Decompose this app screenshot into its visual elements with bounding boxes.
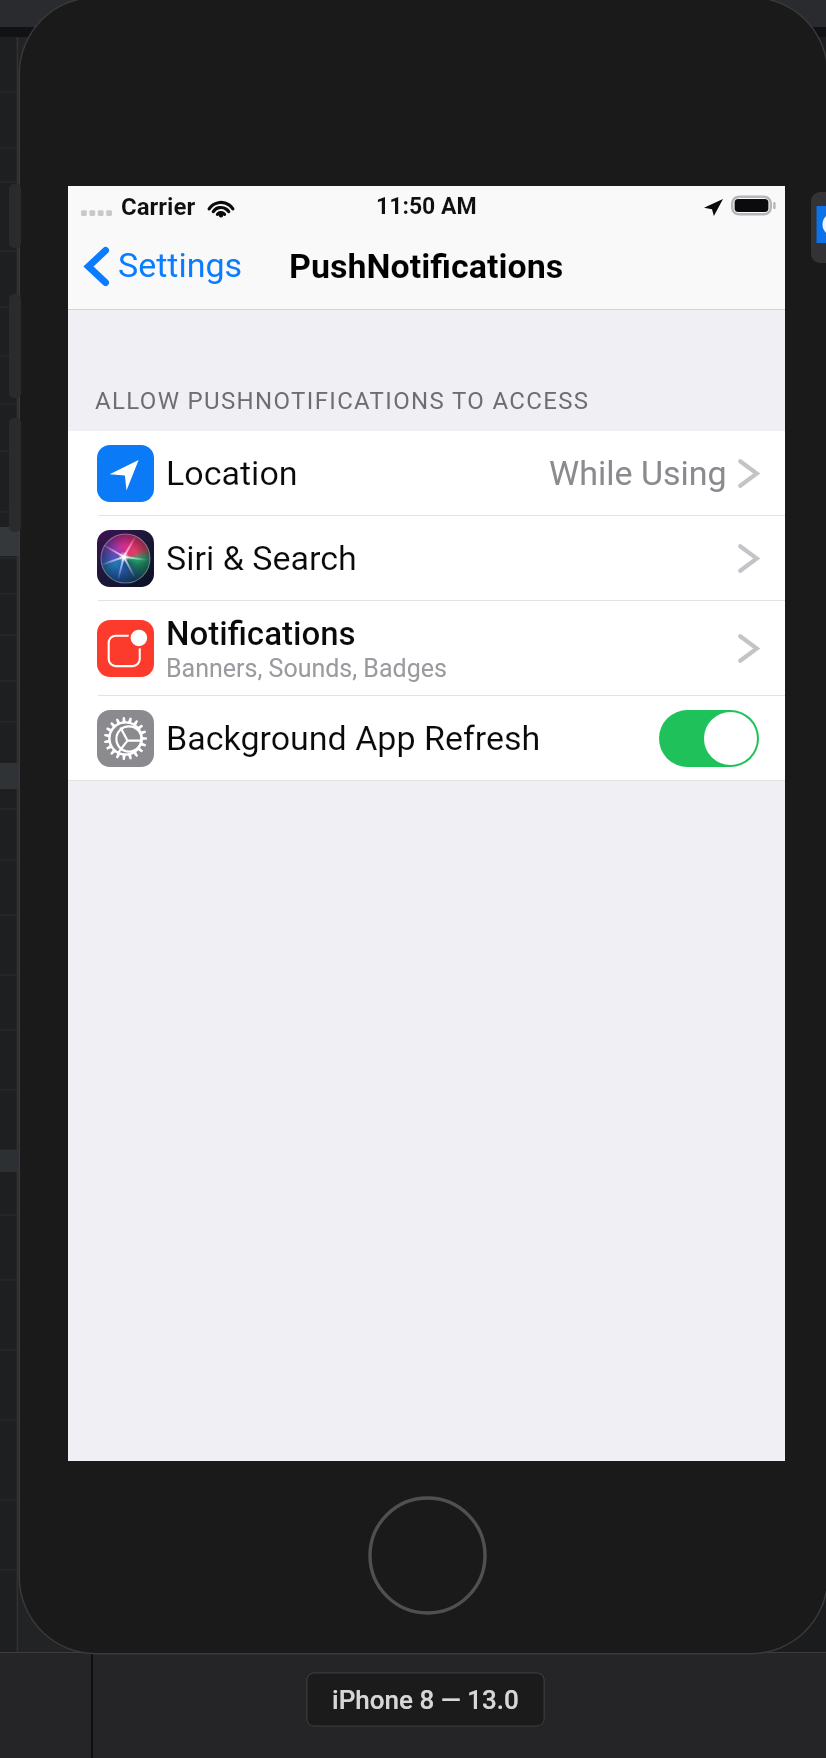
button[interactable]: Siri & Search (68, 516, 785, 600)
staticText: Notifications (166, 614, 356, 653)
staticText: Siri & Search (166, 538, 357, 578)
button[interactable]: Notifications (68, 601, 785, 695)
staticText: Carrier (121, 193, 196, 221)
button[interactable]: Location (68, 431, 785, 515)
staticText: Settings (118, 245, 243, 285)
staticText: Banners, Sounds, Badges (166, 654, 447, 683)
button[interactable]: Settings (68, 236, 255, 296)
staticText: PushNotifications (289, 246, 564, 286)
staticText: 11:50 AM (376, 193, 477, 220)
button[interactable]: iPhone 8 — 13.0 (306, 1672, 545, 1727)
button[interactable]: Background App Refresh (68, 696, 785, 780)
staticText: While Using (549, 453, 727, 493)
staticText: ALLOW PUSHNOTIFICATIONS TO ACCESS (95, 387, 590, 415)
button[interactable]: Home (368, 1496, 487, 1615)
staticText: Location (166, 453, 298, 493)
staticText: Background App Refresh (166, 718, 541, 758)
staticText: iPhone 8 — 13.0 (332, 1685, 519, 1715)
button[interactable]: Background App Refresh toggle (659, 710, 759, 767)
